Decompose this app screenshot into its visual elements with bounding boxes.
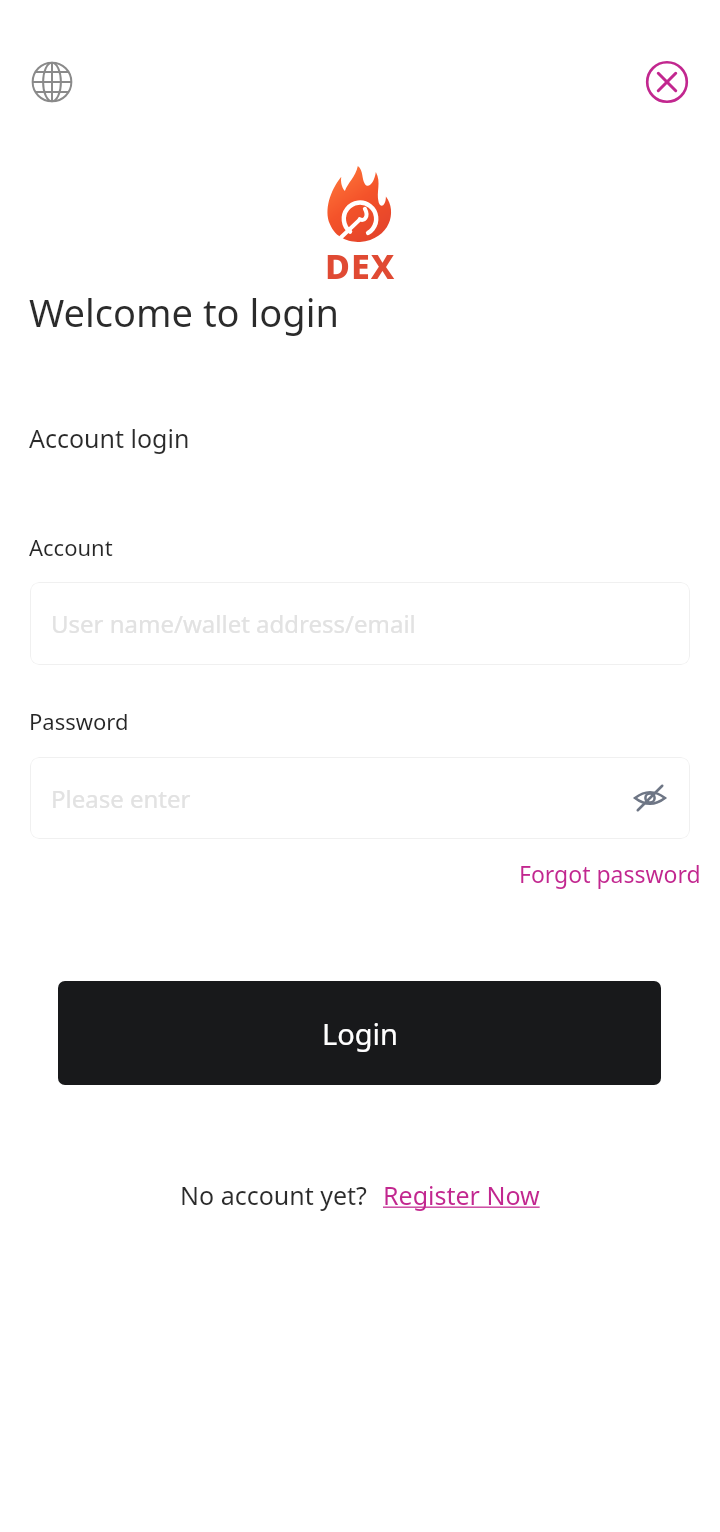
button[interactable]: User name/wallet address/email [30,582,690,665]
staticText: Password [29,706,129,736]
button[interactable]: Please enter [30,757,690,839]
button[interactable]: Register Now [383,1178,540,1212]
button[interactable]: Show password [624,772,676,824]
staticText: Register Now [383,1178,540,1212]
button[interactable]: Language [22,52,82,112]
button[interactable]: Close [637,52,697,112]
staticText: No account yet? [180,1178,367,1212]
staticText: Welcome to login [29,286,339,338]
staticText: Login [322,1014,398,1053]
staticText: Account login [29,421,190,455]
staticText: User name/wallet address/email [51,607,416,640]
staticText: DEX [325,243,396,289]
button[interactable]: Login [58,981,661,1085]
staticText: Please enter [51,782,191,815]
button[interactable]: Forgot password [505,852,715,895]
staticText: Forgot password [519,858,701,889]
staticText: Account [29,532,113,562]
